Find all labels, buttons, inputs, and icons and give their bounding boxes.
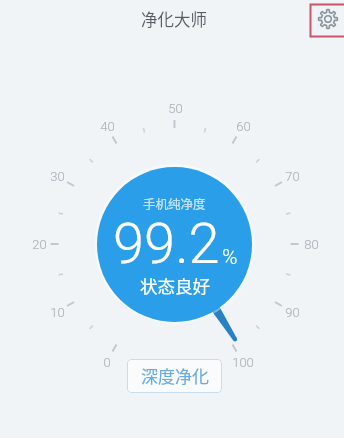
button[interactable]: 手机纯净度 [97,167,252,322]
staticText: 70 [285,169,300,184]
staticText: 20 [32,237,47,252]
button[interactable]: Settings [314,5,342,33]
staticText: 80 [304,237,319,252]
staticText: 状态良好 [140,273,210,298]
staticText: 10 [50,305,65,320]
staticText: 50 [168,101,183,116]
staticText: 手机纯净度 [143,194,206,212]
staticText: 0 [103,355,111,370]
staticText: 99.2 [113,211,220,277]
staticText: 60 [236,119,251,134]
staticText: 深度净化 [141,363,209,388]
staticText: 40 [100,119,115,134]
staticText: 净化大师 [141,7,207,31]
button[interactable]: 深度净化 [127,359,222,393]
staticText: 30 [50,169,65,184]
staticText: 100 [232,355,254,370]
staticText: % [222,245,238,270]
staticText: 90 [285,305,300,320]
